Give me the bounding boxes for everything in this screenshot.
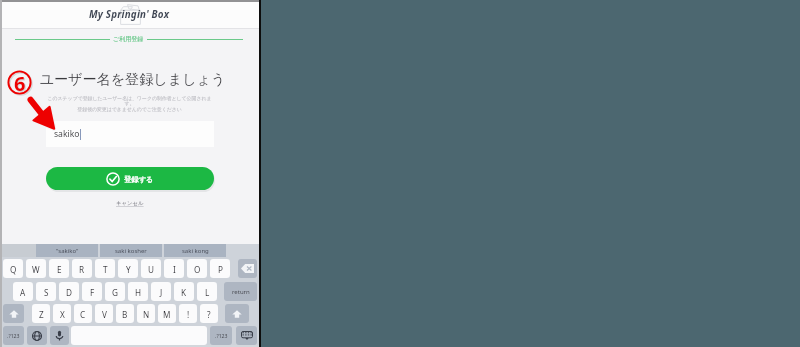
staticText: O [194, 264, 201, 275]
staticText: Z [39, 309, 44, 320]
button[interactable]: return [224, 282, 257, 301]
staticText: G [112, 287, 118, 298]
staticText: D [66, 287, 72, 298]
button[interactable]: C [74, 304, 92, 323]
button[interactable]: Shift [225, 304, 249, 323]
button[interactable]: Emoji keyboard [27, 326, 47, 345]
button[interactable]: W [26, 259, 46, 278]
staticText: U [148, 264, 154, 275]
staticText: Y [126, 264, 131, 275]
button[interactable]: I [164, 259, 184, 278]
staticText: return [232, 288, 250, 296]
button[interactable]: U [141, 259, 161, 278]
button[interactable]: 登録する [46, 167, 214, 190]
staticText: N [143, 309, 150, 320]
staticText: ! [187, 309, 190, 320]
staticText: J [160, 287, 163, 298]
staticText: saki kosher [115, 247, 147, 255]
button[interactable]: .?123 [210, 326, 232, 345]
staticText: P [218, 264, 223, 275]
button[interactable]: X [53, 304, 71, 323]
button[interactable]: ! [179, 304, 197, 323]
staticText: H [135, 287, 142, 298]
button[interactable]: saki kong [164, 244, 226, 257]
button[interactable]: F [82, 282, 102, 301]
button[interactable]: Z [32, 304, 50, 323]
button[interactable]: sakiko [46, 121, 214, 147]
staticText: K [181, 287, 187, 298]
staticText: A [20, 287, 26, 298]
staticText: 6 [14, 70, 26, 95]
staticText: ? [207, 309, 211, 320]
button[interactable]: P [210, 259, 230, 278]
button[interactable]: G [105, 282, 125, 301]
staticText: このステップで登録したユーザー名は、ワークの制作者として公開されま す。 登録後… [0, 95, 259, 113]
staticText: W [32, 264, 40, 275]
button[interactable]: Backspace [238, 259, 257, 278]
button[interactable]: ? [200, 304, 218, 323]
button[interactable]: Dictation [50, 326, 69, 345]
staticText: X [60, 309, 65, 320]
staticText: M [163, 309, 171, 320]
staticText: B [122, 309, 128, 320]
staticText: 6 [15, 71, 27, 96]
staticText: saki kong [182, 247, 209, 255]
staticText: My Springin' Box [89, 8, 170, 21]
button[interactable]: O [187, 259, 207, 278]
button[interactable]: B [116, 304, 134, 323]
button[interactable]: N [137, 304, 155, 323]
staticText: C [80, 309, 86, 320]
staticText: F [90, 287, 95, 298]
staticText: ご利用登録 [113, 35, 144, 43]
button[interactable]: .?123 [3, 326, 24, 345]
button[interactable]: E [49, 259, 69, 278]
staticText: T [103, 264, 108, 275]
button[interactable]: L [197, 282, 217, 301]
staticText: ユーザー名を登録しましょう [3, 70, 262, 88]
button[interactable]: Q [3, 259, 23, 278]
button[interactable]: V [95, 304, 113, 323]
button[interactable]: M [158, 304, 176, 323]
staticText: R [79, 264, 85, 275]
staticText: Q [10, 264, 17, 275]
staticText: sakiko [54, 128, 80, 140]
button[interactable]: "sakiko" [36, 244, 98, 257]
button[interactable]: K [174, 282, 194, 301]
staticText: 登録する [124, 175, 154, 184]
button[interactable]: A [13, 282, 33, 301]
button[interactable]: Y [118, 259, 138, 278]
staticText: S [44, 287, 49, 298]
button[interactable]: T [95, 259, 115, 278]
button[interactable]: S [36, 282, 56, 301]
staticText: .?123 [215, 332, 228, 339]
staticText: V [102, 309, 107, 320]
button[interactable]: saki kosher [100, 244, 162, 257]
staticText: E [57, 264, 62, 275]
button[interactable]: Hide keyboard [236, 326, 257, 345]
staticText: I [173, 264, 176, 275]
button[interactable]: D [59, 282, 79, 301]
button[interactable]: R [72, 259, 92, 278]
button[interactable]: J [151, 282, 171, 301]
staticText: L [205, 287, 210, 298]
staticText: "sakiko" [56, 247, 79, 255]
staticText: .?123 [7, 332, 20, 339]
button[interactable]: キャンセル [116, 200, 144, 207]
button[interactable]: Shift [3, 304, 24, 323]
button[interactable]: H [128, 282, 148, 301]
